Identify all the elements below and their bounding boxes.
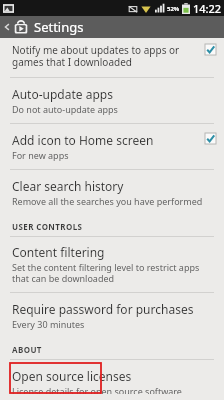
staticText: Do not auto-update apps: [12, 103, 118, 115]
button[interactable]: Back: [3, 23, 11, 31]
staticText: Content filtering: [12, 244, 105, 260]
staticText: Every 30 minutes: [12, 318, 85, 330]
button[interactable]: Auto-update apps: [0, 78, 224, 123]
staticText: 14:22: [193, 1, 222, 16]
staticText: License details for open source software: [12, 385, 182, 394]
staticText: USER CONTROLS: [12, 221, 83, 232]
button[interactable]: Add icon to Home screen: [0, 124, 224, 169]
staticText: Open source licenses: [12, 368, 132, 384]
staticText: 52%: [167, 5, 180, 13]
button[interactable]: Back: [0, 16, 224, 38]
staticText: Clear search history: [12, 178, 124, 194]
staticText: Auto-update apps: [12, 86, 113, 102]
button[interactable]: Open source licenses: [0, 360, 224, 400]
staticText: Settings: [34, 18, 84, 36]
staticText: Set the content filtering level to restr…: [12, 261, 200, 284]
button[interactable]: Notify me about updates to apps or games…: [0, 38, 224, 77]
button[interactable]: Content filtering: [0, 237, 224, 292]
staticText: Notify me about updates to apps or games…: [12, 43, 180, 69]
staticText: For new apps: [12, 149, 69, 161]
staticText: Remove all the searches you have perform…: [12, 195, 203, 207]
staticText: Add icon to Home screen: [12, 132, 154, 148]
button[interactable]: Require password for purchases: [0, 293, 224, 337]
staticText: Require password for purchases: [12, 301, 194, 317]
staticText: ABOUT: [12, 344, 42, 355]
button[interactable]: Clear search history: [0, 170, 224, 214]
